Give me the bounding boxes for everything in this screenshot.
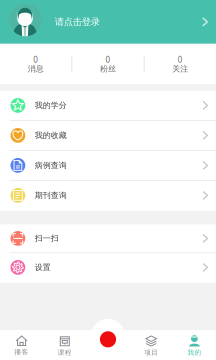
button[interactable]: 设置 [0, 253, 216, 282]
staticText: 扫一扫 [35, 233, 59, 243]
staticText: 请点击登录 [55, 16, 100, 28]
staticText: 我的收藏 [35, 130, 67, 140]
staticText: 我的学分 [35, 100, 67, 110]
staticText: 设置 [35, 262, 51, 272]
button[interactable]: 请点击登录 [0, 0, 216, 44]
button[interactable]: 播客 [0, 330, 43, 360]
staticText: 关注 [172, 64, 188, 74]
staticText: 0 [178, 54, 183, 65]
staticText: 课程 [58, 348, 72, 357]
button[interactable]: 我的收藏 [0, 121, 216, 151]
staticText: 消息 [28, 64, 44, 74]
button[interactable]: 我的 [173, 330, 216, 360]
button[interactable]: 我的学分 [0, 91, 216, 121]
staticText: 0 [33, 54, 38, 65]
button[interactable]: 项目 [130, 330, 173, 360]
staticText: 0 [105, 54, 110, 65]
button[interactable]: 课程 [43, 330, 86, 360]
button[interactable]: Record [91, 319, 125, 352]
staticText: 期刊查询 [35, 190, 67, 200]
button[interactable]: 期刊查询 [0, 181, 216, 211]
staticText: 我的 [187, 348, 201, 357]
staticText: 粉丝 [100, 64, 116, 74]
staticText: 病例查询 [35, 160, 67, 170]
staticText: 项目 [144, 348, 158, 357]
button[interactable]: 病例查询 [0, 151, 216, 181]
button[interactable]: 扫一扫 [0, 224, 216, 253]
staticText: 播客 [15, 348, 29, 356]
